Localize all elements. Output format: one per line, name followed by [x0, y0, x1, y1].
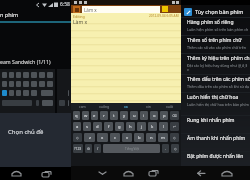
- button[interactable]: xin: [137, 103, 159, 110]
- button[interactable]: e: [91, 111, 98, 120]
- button[interactable]: .: [162, 144, 169, 153]
- staticText: t: [113, 113, 115, 119]
- staticText: Thêm dấu trên các phím số: [187, 76, 250, 83]
- button[interactable]: ⌫: [170, 111, 179, 120]
- staticText: .: [165, 146, 166, 151]
- button[interactable]: Thêm ký hiệu trên phím chữ: [181, 55, 250, 76]
- staticText: l: [163, 124, 165, 130]
- staticText: z: [89, 135, 91, 141]
- button[interactable]: w: [82, 111, 89, 120]
- staticText: n phím: [0, 11, 19, 18]
- staticText: ◇: [174, 147, 177, 151]
- staticText: m: [161, 135, 165, 141]
- button[interactable]: n: [146, 133, 156, 142]
- staticText: Hàng phím số riêng: [187, 19, 234, 26]
- button[interactable]: g: [115, 122, 124, 131]
- staticText: r: [103, 113, 105, 119]
- staticText: Thêm số trên phím chữ: [187, 37, 242, 44]
- button[interactable]: Back: [193, 166, 209, 180]
- button[interactable]: ?123: [73, 144, 83, 153]
- staticText: Chọn chủ đề: [8, 128, 44, 136]
- staticText: ⌫: [172, 114, 177, 118]
- button[interactable]: l: [159, 122, 168, 131]
- button[interactable]: xuất: [159, 103, 181, 110]
- staticText: 2012-09-04 6:05 AM: [149, 14, 179, 18]
- button[interactable]: ◇: [170, 133, 179, 142]
- button[interactable]: Recents: [145, 166, 161, 180]
- staticText: s: [86, 124, 89, 130]
- button[interactable]: u: [130, 111, 138, 120]
- button[interactable]: Thêm dấu trên các phím số: [181, 76, 250, 94]
- staticText: v: [126, 135, 129, 141]
- button[interactable]: Tùy chọn bàn phím: [184, 6, 250, 17]
- staticText: Tiếng Việt: [125, 147, 139, 151]
- button[interactable]: xa: [115, 103, 137, 110]
- button[interactable]: h: [126, 122, 135, 131]
- button[interactable]: f: [104, 122, 113, 131]
- button[interactable]: i: [140, 111, 148, 120]
- button[interactable]: p: [160, 111, 168, 120]
- button[interactable]: o: [150, 111, 158, 120]
- staticText: Thêm ký hiệu trên phím chữ: [187, 55, 250, 62]
- staticText: Thêm các số vào các phím chữ trên: [187, 45, 247, 50]
- button[interactable]: b: [134, 133, 144, 142]
- button[interactable]: s: [83, 122, 91, 131]
- button[interactable]: Home: [8, 167, 24, 180]
- staticText: w: [84, 113, 88, 119]
- button[interactable]: v: [122, 133, 132, 142]
- button[interactable]: cam: [71, 103, 93, 110]
- staticText: xuất: [166, 104, 174, 109]
- button[interactable]: ◇: [73, 133, 82, 142]
- staticText: q: [75, 113, 78, 119]
- button[interactable]: c: [110, 133, 120, 142]
- staticText: c: [114, 135, 117, 141]
- button[interactable]: t: [110, 111, 118, 120]
- staticText: /: [97, 146, 99, 151]
- staticText: ◇: [76, 136, 79, 140]
- button[interactable]: x: [97, 133, 108, 142]
- staticText: o: [153, 113, 156, 119]
- staticText: xa: [124, 104, 128, 109]
- button[interactable]: Rung khi nhấn phím: [181, 117, 250, 135]
- button[interactable]: Luôn hiển thị chữ hoa: [181, 94, 250, 112]
- button[interactable]: Recents: [38, 167, 54, 180]
- button[interactable]: k: [148, 122, 157, 131]
- staticText: eam Sandwich (1/11): [0, 58, 51, 65]
- button[interactable]: ⚙: [85, 144, 92, 153]
- button[interactable]: Hide keyboard: [94, 166, 110, 180]
- staticText: h: [129, 124, 132, 130]
- staticText: Tùy chọn bàn phím: [195, 8, 244, 15]
- staticText: Luôn hiển thị chữ hoa trên bàn phím: [187, 102, 249, 107]
- staticText: e: [93, 113, 96, 119]
- button[interactable]: q: [73, 111, 80, 120]
- button[interactable]: z: [84, 133, 95, 142]
- button[interactable]: j: [137, 122, 146, 131]
- staticText: j: [141, 124, 143, 130]
- staticText: Làm x: [84, 7, 97, 13]
- staticText: ?123: [74, 146, 82, 151]
- button[interactable]: m: [158, 133, 168, 142]
- button[interactable]: Âm thanh khi nhấn phím: [181, 135, 250, 153]
- button[interactable]: r: [100, 111, 108, 120]
- staticText: ⚙: [87, 147, 91, 151]
- button[interactable]: xuống: [93, 103, 115, 110]
- button[interactable]: d: [93, 122, 102, 131]
- button[interactable]: Home: [120, 166, 136, 180]
- staticText: i: [143, 113, 145, 119]
- staticText: a: [76, 124, 79, 130]
- button[interactable]: /: [94, 144, 101, 153]
- staticText: y: [123, 113, 126, 119]
- button[interactable]: ↵: [170, 122, 179, 131]
- button[interactable]: y: [120, 111, 128, 120]
- staticText: x: [101, 135, 104, 141]
- button[interactable]: a: [73, 122, 81, 131]
- button[interactable]: Home: [219, 166, 235, 180]
- staticText: Editing: [73, 14, 85, 19]
- button[interactable]: Thêm số trên phím chữ: [181, 37, 250, 55]
- staticText: Luôn hiện phím số trên bàn phím ch: [187, 27, 249, 32]
- button[interactable]: Tiếng Việt: [103, 144, 160, 153]
- button[interactable]: ◇: [171, 144, 179, 153]
- button[interactable]: Bật phím được nhấn lên: [181, 153, 250, 171]
- button[interactable]: Hàng phím số riêng: [181, 19, 250, 37]
